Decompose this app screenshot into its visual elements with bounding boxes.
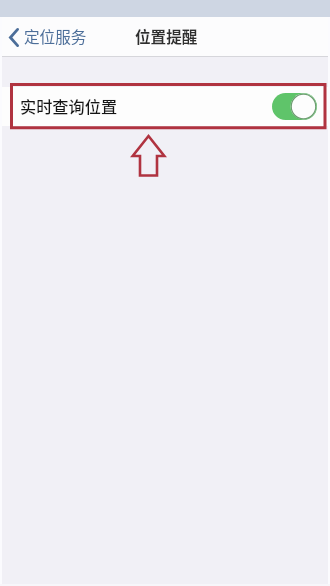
other: 标注 [2,0,328,586]
staticText: 实时查询位置 [20,94,118,117]
button[interactable]: 定位服务 [2,22,95,53]
staticText: 位置提醒 [135,25,198,48]
button[interactable]: 实时查询位置 开关 [272,93,317,120]
staticText: 定位服务 [24,25,87,48]
button[interactable]: 实时查询位置 [2,87,328,126]
